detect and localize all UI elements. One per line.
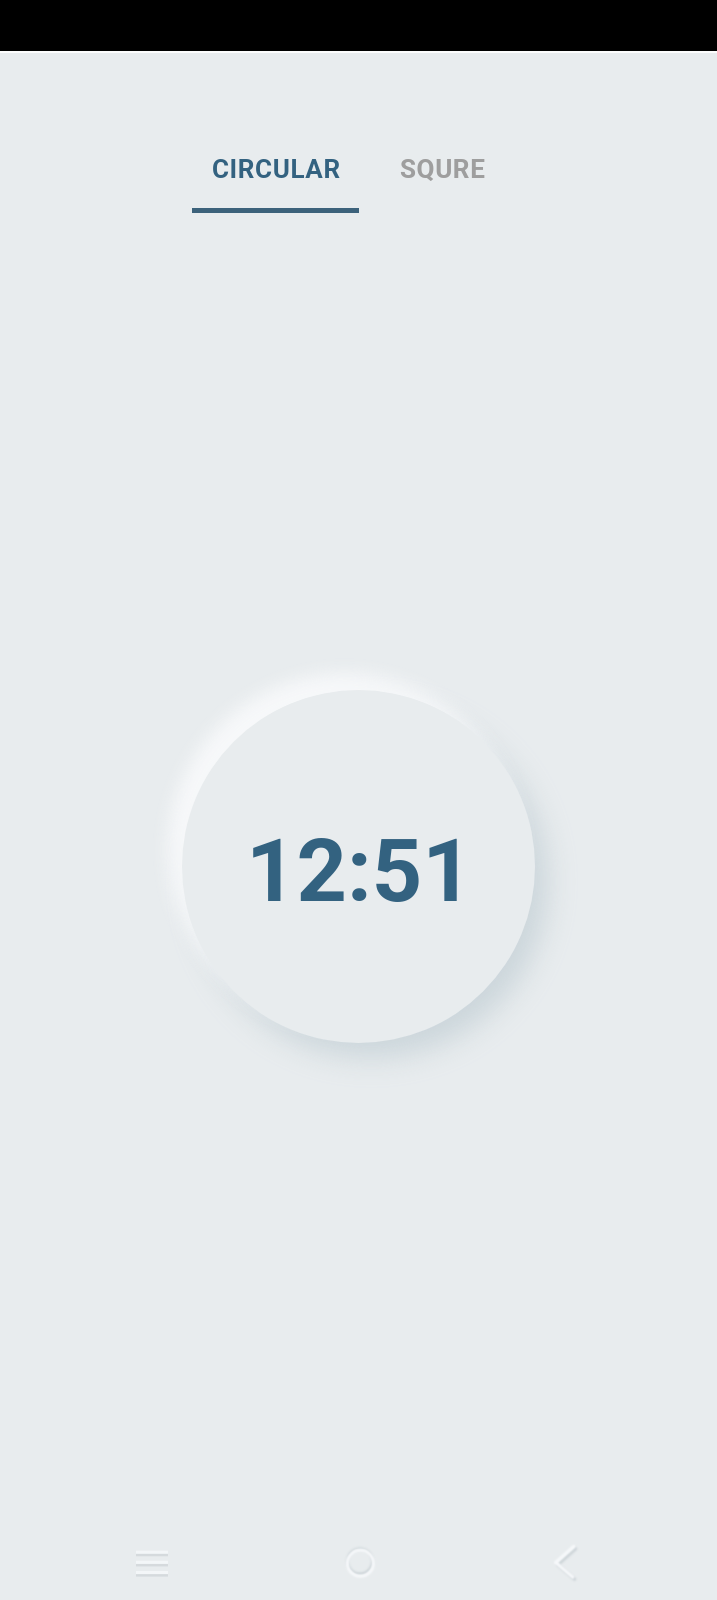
staticText: SQURE — [400, 154, 486, 184]
button[interactable]: CIRCULAR — [194, 142, 359, 215]
staticText: 12:51 — [246, 819, 473, 922]
button[interactable]: Recent apps — [112, 1520, 192, 1600]
button[interactable]: SQURE — [360, 142, 525, 215]
staticText: CIRCULAR — [212, 154, 341, 184]
